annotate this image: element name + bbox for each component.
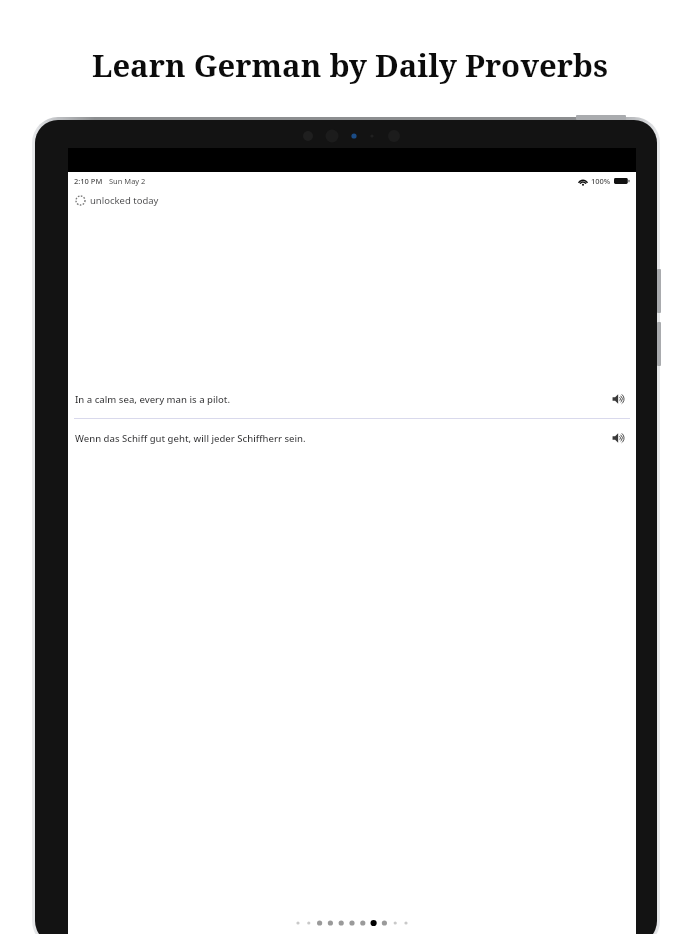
- staticText: Sun May 2: [109, 176, 146, 186]
- staticText: Wenn das Schiff gut geht, will jeder Sch…: [75, 432, 609, 445]
- staticText: unlocked today: [90, 194, 159, 207]
- button[interactable]: In a calm sea, every man is a pilot.: [68, 380, 636, 418]
- staticText: In a calm sea, every man is a pilot.: [75, 393, 609, 406]
- staticText: Learn German by Daily Proverbs: [0, 44, 700, 86]
- button[interactable]: Wenn das Schiff gut geht, will jeder Sch…: [68, 419, 636, 457]
- button[interactable]: Play pronunciation: [609, 389, 629, 409]
- staticText: 100%: [591, 176, 611, 186]
- button[interactable]: unlocked today: [68, 190, 636, 210]
- button[interactable]: Play pronunciation: [609, 428, 629, 448]
- staticText: 2:10 PM: [74, 176, 103, 186]
